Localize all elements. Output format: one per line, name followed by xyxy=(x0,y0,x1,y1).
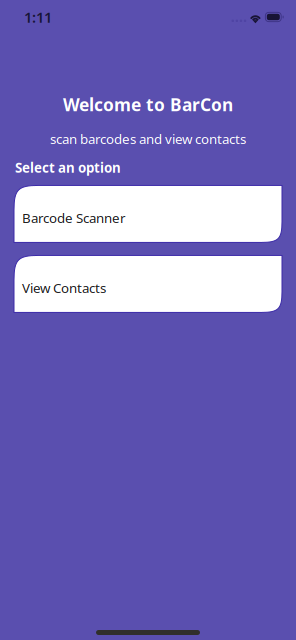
staticText: scan barcodes and view contacts xyxy=(50,130,246,148)
staticText: Barcode Scanner xyxy=(22,209,126,227)
staticText: View Contacts xyxy=(22,279,106,297)
staticText: Select an option xyxy=(15,159,121,176)
staticText: 1:11 xyxy=(24,7,52,27)
staticText: Welcome to BarCon xyxy=(63,93,233,116)
button[interactable]: Barcode Scanner xyxy=(14,185,282,242)
button[interactable]: View Contacts xyxy=(14,255,282,312)
